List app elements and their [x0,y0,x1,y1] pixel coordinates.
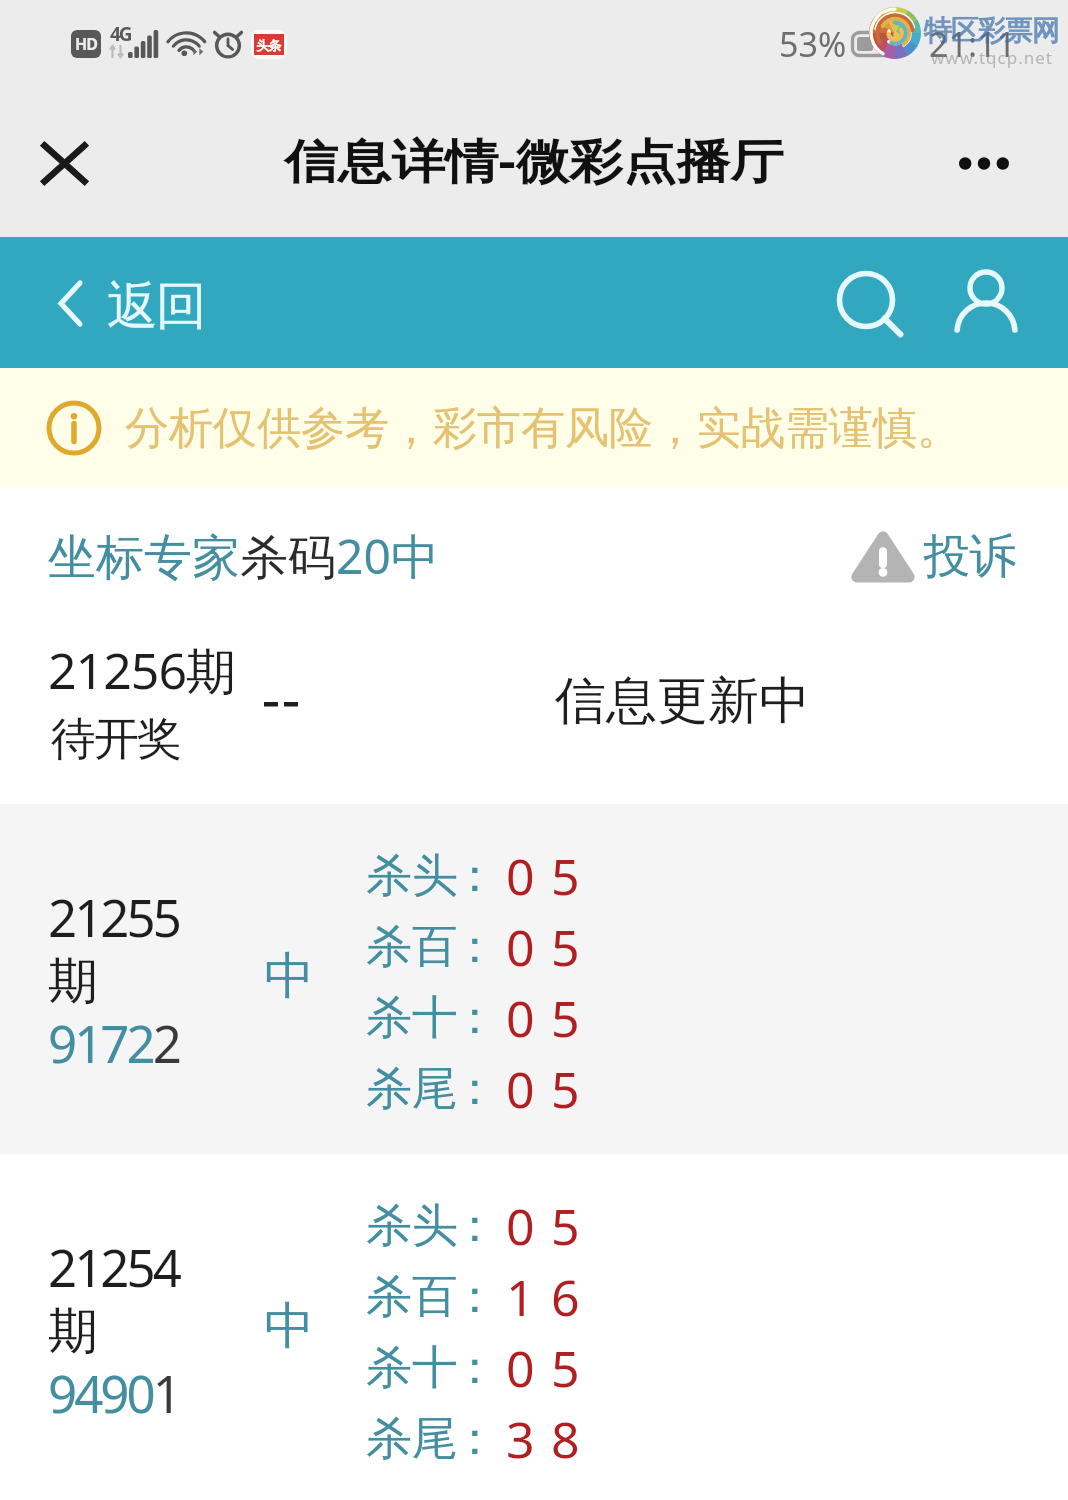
staticText: 1 [506,1263,535,1331]
staticText: 中 [264,1295,314,1358]
staticText: 21255 [48,882,179,951]
button[interactable]: Close [18,117,110,209]
staticText: 5 [551,842,580,910]
staticText: 21254 [48,1232,179,1301]
staticText: 5 [551,913,580,981]
button[interactable]: Profile [940,257,1032,349]
staticText: 期 [48,950,98,1013]
staticText: 4G [110,21,131,47]
staticText: 杀尾 [366,1410,458,1468]
staticText: ： [452,1268,498,1326]
staticText: www.tqcp.net [931,46,1053,69]
staticText: 杀尾 [366,1060,458,1118]
staticText: 5 [551,984,580,1052]
staticText: 中 [264,945,314,1008]
staticText: 特区彩票网 [924,13,1059,48]
staticText: 5 [551,1192,580,1260]
button[interactable]: 投诉 [850,527,1016,586]
button[interactable]: 21254 [0,1154,1068,1500]
staticText: 8 [551,1405,580,1473]
staticText: 5 [551,1334,580,1402]
staticText: 0 [506,1055,535,1123]
button[interactable]: More options [939,128,1029,198]
staticText: ： [452,1197,498,1255]
staticText: 21256期 [48,636,235,704]
staticText: 坐标专家杀码20中 [48,523,439,589]
staticText: 杀十 [366,1339,458,1397]
staticText: 6 [551,1263,580,1331]
staticText: 信息更新中 [555,669,810,733]
staticText: 0 [506,842,535,910]
staticText: 3 [506,1405,535,1473]
staticText: 杀十 [366,989,458,1047]
staticText: 杀头 [366,1197,458,1255]
staticText: ： [452,989,498,1047]
staticText: ： [452,1339,498,1397]
staticText: 0 [506,1192,535,1260]
staticText: 分析仅供参考，彩市有风险，实战需谨慎。 [125,401,961,456]
staticText: HD [75,33,97,55]
button[interactable]: 21255 [0,804,1068,1154]
staticText: ： [452,847,498,905]
button[interactable]: Search [828,257,920,349]
staticText: 0 [506,984,535,1052]
staticText: 投诉 [924,527,1016,586]
staticText: 杀百 [366,918,458,976]
staticText: 0 [506,913,535,981]
staticText: 53% [779,21,847,67]
staticText: 杀百 [366,1268,458,1326]
staticText: 期 [48,1300,98,1363]
staticText: 信息详情-微彩点播厅 [284,128,785,192]
staticText: ： [452,1060,498,1118]
staticText: 待开奖 [52,711,181,768]
button[interactable]: 返回 [58,271,206,335]
staticText: 5 [551,1055,580,1123]
staticText: ： [452,918,498,976]
staticText: 返回 [108,274,206,338]
staticText: 0 [506,1334,535,1402]
staticText: 21:11 [929,21,1016,67]
staticText: ： [452,1410,498,1468]
staticText: 94901 [48,1358,179,1427]
staticText: 杀头 [366,847,458,905]
staticText: 91722 [48,1008,179,1077]
staticText: 头条 [257,37,281,53]
